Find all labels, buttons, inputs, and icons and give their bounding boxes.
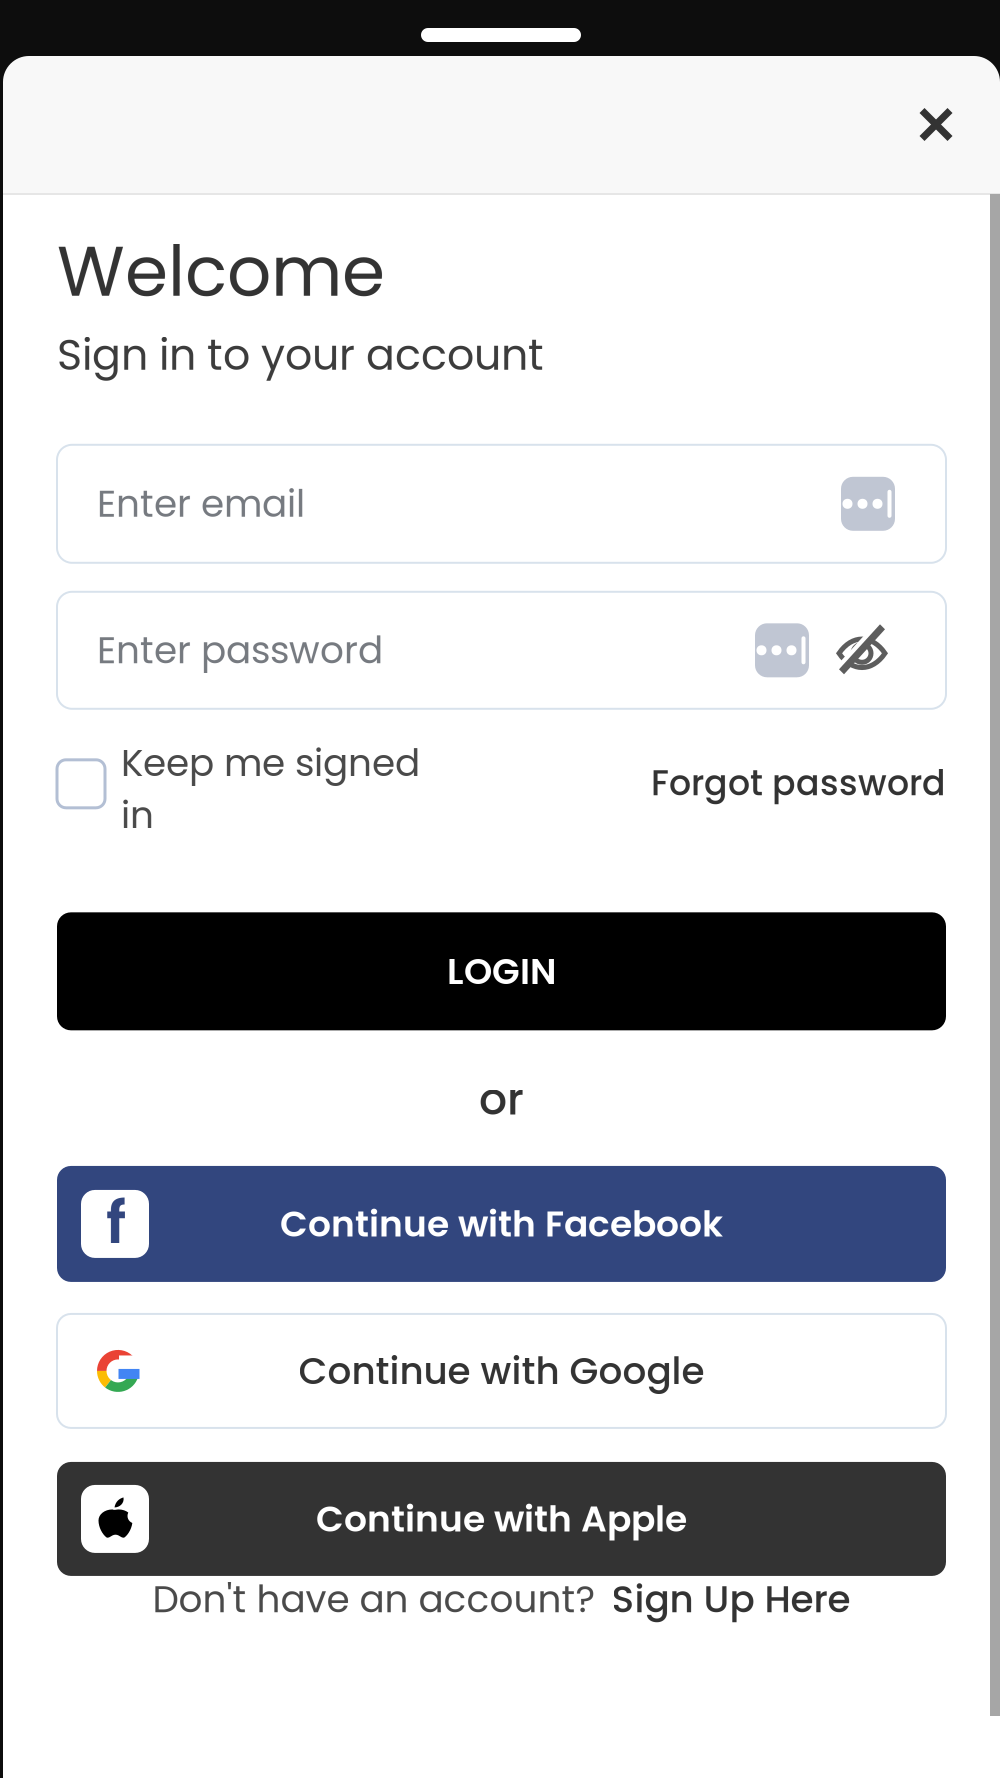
staticText: f (106, 1182, 126, 1264)
staticText: Continue with Facebook (280, 1199, 723, 1249)
button[interactable]: Continue with Apple (57, 1462, 946, 1576)
button[interactable]: Forgot password (651, 737, 946, 807)
staticText: Sign Up Here (611, 1573, 850, 1625)
staticText: Continue with Google (298, 1345, 704, 1397)
staticText: Continue with Apple (316, 1494, 687, 1544)
staticText: or (479, 1068, 524, 1130)
button[interactable]: Sign Up Here (611, 1573, 850, 1625)
button[interactable]: Show password (835, 623, 889, 677)
staticText: Keep me signed in (121, 737, 420, 841)
staticText: Enter password (97, 624, 383, 676)
button[interactable]: Close (890, 78, 982, 170)
staticText: LOGIN (447, 946, 556, 996)
staticText: Welcome (57, 223, 385, 320)
staticText: Don't have an account? (152, 1573, 595, 1625)
button[interactable]: Continue with Google (57, 1314, 946, 1428)
button[interactable]: LOGIN (57, 912, 946, 1030)
button[interactable]: Keep me signed in (57, 737, 421, 841)
staticText: Enter email (97, 478, 305, 530)
button[interactable]: f (57, 1166, 946, 1282)
staticText: Sign in to your account (57, 325, 544, 385)
staticText: Forgot password (651, 759, 946, 807)
